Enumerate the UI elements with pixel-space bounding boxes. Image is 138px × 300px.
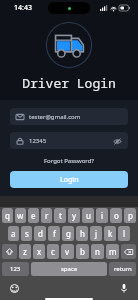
- button[interactable]: Login: [10, 171, 128, 188]
- staticText: 123: [10, 265, 21, 273]
- button[interactable]: o: [110, 208, 122, 223]
- button[interactable]: t: [54, 208, 66, 223]
- button[interactable]: return: [109, 262, 136, 276]
- button[interactable]: g: [62, 226, 74, 241]
- button[interactable]: f: [48, 226, 60, 241]
- button[interactable]: u: [82, 208, 94, 223]
- button[interactable]: r: [41, 208, 52, 223]
- staticText: n: [95, 246, 100, 257]
- staticText: w: [17, 210, 24, 221]
- button[interactable]: z: [19, 244, 31, 259]
- button[interactable]: k: [104, 226, 116, 241]
- button[interactable]: j: [90, 226, 102, 241]
- staticText: e: [31, 210, 36, 221]
- button[interactable]: Forgot Password?: [42, 155, 96, 167]
- button[interactable]: space: [31, 262, 107, 276]
- button[interactable]: v: [61, 244, 74, 259]
- button[interactable]: Shift: [2, 244, 17, 259]
- button[interactable]: s: [21, 226, 32, 241]
- button[interactable]: d: [34, 226, 46, 241]
- staticText: m: [109, 246, 117, 257]
- staticText: g: [66, 228, 71, 239]
- staticText: d: [38, 228, 43, 239]
- staticText: x: [37, 246, 42, 257]
- staticText: u: [86, 210, 91, 221]
- button[interactable]: h: [76, 226, 88, 241]
- staticText: Driver Login: [0, 74, 138, 92]
- button[interactable]: tester@gmail.com: [10, 108, 128, 125]
- button[interactable]: q: [2, 208, 13, 223]
- button[interactable]: m: [106, 244, 119, 259]
- staticText: h: [80, 228, 85, 239]
- staticText: b: [80, 246, 85, 257]
- staticText: p: [128, 210, 133, 221]
- staticText: t: [59, 210, 62, 221]
- button[interactable]: x: [33, 244, 45, 259]
- staticText: tester@gmail.com: [29, 113, 81, 121]
- button[interactable]: c: [47, 244, 59, 259]
- button[interactable]: n: [91, 244, 104, 259]
- staticText: v: [65, 246, 70, 257]
- staticText: return: [114, 265, 132, 273]
- button[interactable]: i: [96, 208, 108, 223]
- button[interactable]: b: [76, 244, 89, 259]
- button[interactable]: e: [28, 208, 39, 223]
- staticText: Forgot Password?: [44, 157, 94, 165]
- staticText: z: [23, 246, 27, 257]
- staticText: space: [61, 265, 78, 273]
- staticText: j: [95, 228, 98, 239]
- staticText: a: [11, 228, 16, 239]
- staticText: l: [123, 228, 126, 239]
- button[interactable]: a: [8, 226, 19, 241]
- button[interactable]: Backspace: [121, 244, 136, 259]
- staticText: k: [108, 228, 113, 239]
- button[interactable]: p: [124, 208, 136, 223]
- staticText: r: [45, 210, 49, 221]
- staticText: f: [53, 228, 56, 239]
- staticText: o: [114, 210, 119, 221]
- staticText: Login: [60, 175, 79, 185]
- button[interactable]: y: [68, 208, 80, 223]
- staticText: y: [72, 210, 77, 221]
- staticText: 14:43: [14, 3, 32, 13]
- button[interactable]: w: [15, 208, 26, 223]
- staticText: s: [25, 228, 29, 239]
- button[interactable]: 123: [2, 262, 29, 276]
- button[interactable]: 12345: [10, 132, 128, 149]
- staticText: q: [5, 210, 10, 221]
- staticText: 12345: [29, 137, 47, 145]
- staticText: i: [101, 210, 104, 221]
- button[interactable]: l: [118, 226, 130, 241]
- button[interactable]: Emoji: [8, 282, 20, 294]
- button[interactable]: Dictation: [118, 282, 130, 294]
- staticText: c: [51, 246, 55, 257]
- button[interactable]: Toggle password visibility: [112, 136, 122, 146]
